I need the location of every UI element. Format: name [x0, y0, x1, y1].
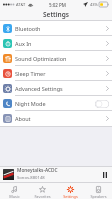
button[interactable]: Speakers — [84, 183, 112, 199]
button[interactable]: Sound Optimization — [0, 51, 112, 66]
button[interactable]: Favorites — [28, 183, 56, 199]
staticText: Favorites — [34, 194, 51, 199]
button[interactable]: Advanced Settings — [0, 81, 112, 96]
button[interactable]: Settings — [56, 183, 84, 199]
staticText: Settings — [43, 10, 69, 19]
button[interactable]: Pause — [100, 170, 109, 179]
staticText: 43% — [90, 2, 98, 7]
button[interactable]: About — [0, 111, 112, 126]
staticText: Sonos-880148 — [17, 175, 45, 181]
staticText: Night Mode — [15, 100, 46, 107]
staticText: AT&T — [16, 2, 26, 7]
staticText: About — [15, 115, 31, 122]
button[interactable]: Night Mode — [0, 96, 112, 111]
staticText: Moneytalks-ACDC — [17, 167, 58, 174]
staticText: 5:02 PM — [49, 2, 66, 8]
button[interactable]: Night Mode toggle — [95, 100, 109, 108]
button[interactable]: Music — [0, 183, 28, 199]
staticText: Music — [9, 194, 20, 199]
staticText: Aux In — [15, 40, 32, 47]
staticText: Advanced Settings — [15, 85, 63, 92]
staticText: Sound Optimization — [15, 55, 67, 62]
button[interactable]: Bluetooth — [0, 21, 112, 36]
staticText: Speakers — [90, 194, 107, 199]
staticText: Bluetooth — [15, 25, 41, 32]
button[interactable]: Aux In — [0, 36, 112, 51]
button[interactable]: Sleep Timer — [0, 66, 112, 81]
staticText: Sleep Timer — [15, 70, 46, 77]
staticText: Settings — [63, 194, 78, 199]
